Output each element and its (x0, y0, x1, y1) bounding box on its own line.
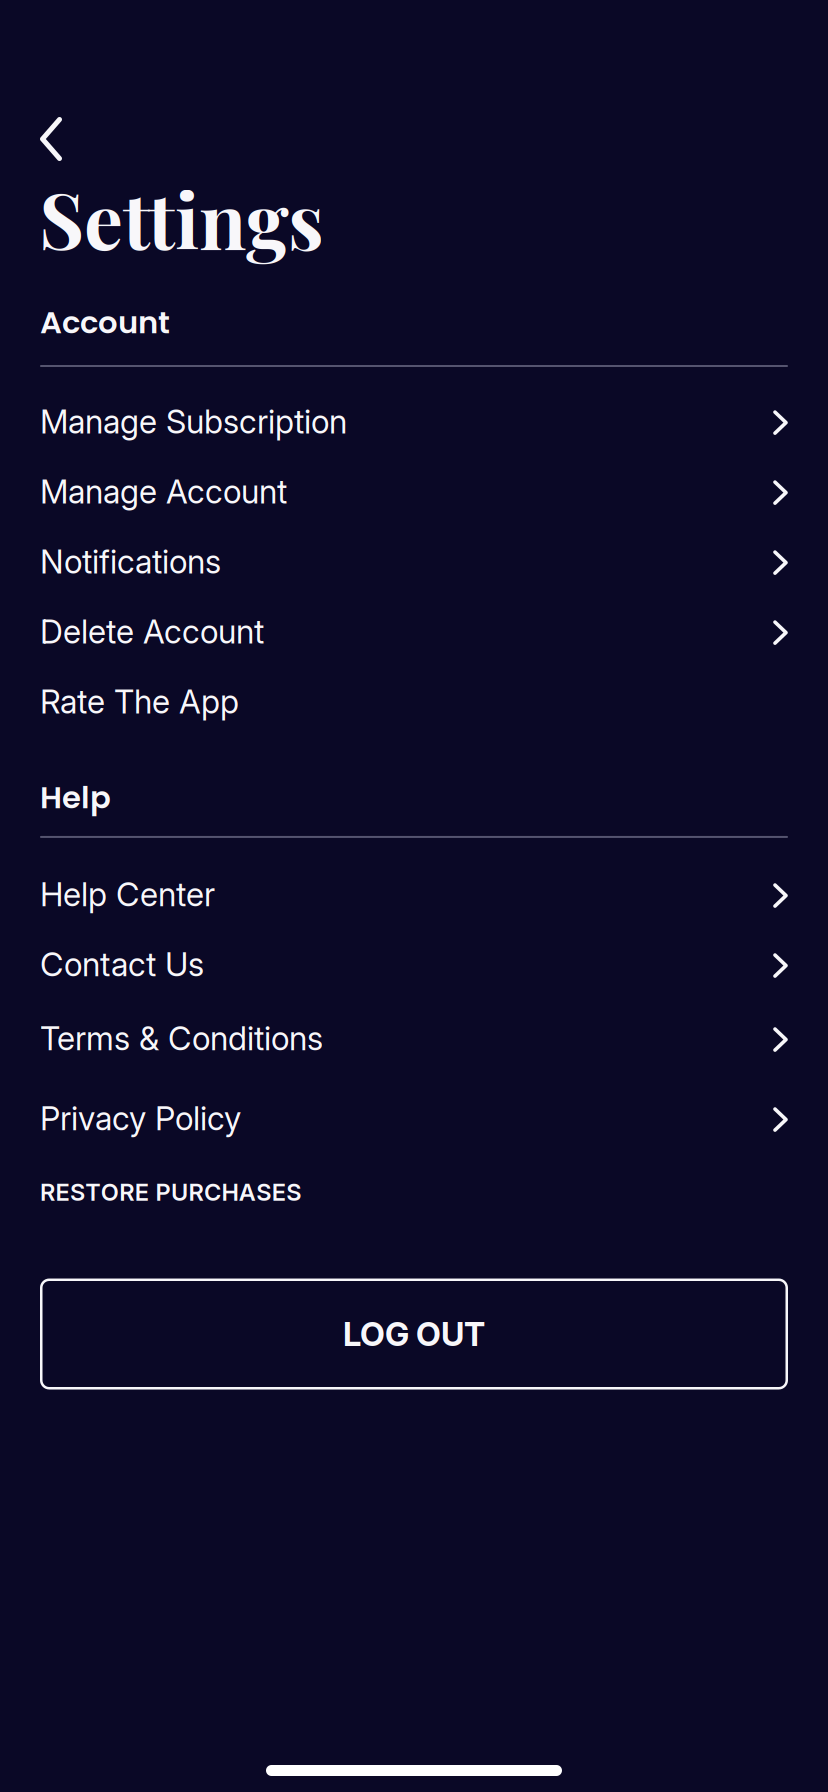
staticText: RESTORE PURCHASES (40, 1178, 301, 1207)
staticText: Rate The App (40, 682, 239, 721)
button[interactable]: Rate The App (0, 682, 828, 752)
button[interactable]: Manage Subscription (0, 402, 828, 472)
staticText: Manage Subscription (40, 402, 347, 441)
button[interactable]: Back (28, 112, 84, 166)
button[interactable]: Contact Us (0, 945, 828, 1019)
staticText: Help Center (40, 875, 215, 914)
staticText: Settings (39, 166, 324, 269)
button[interactable]: Manage Account (0, 472, 828, 542)
button[interactable]: RESTORE PURCHASES (40, 1172, 301, 1213)
staticText: Manage Account (40, 472, 287, 511)
staticText: Terms & Conditions (40, 1019, 323, 1058)
button[interactable]: LOG OUT (40, 1278, 788, 1389)
staticText: Privacy Policy (40, 1099, 241, 1138)
staticText: Delete Account (40, 612, 264, 651)
staticText: Contact Us (40, 945, 204, 984)
staticText: LOG OUT (343, 1314, 485, 1354)
staticText: Help (40, 776, 111, 819)
staticText: Account (40, 301, 170, 344)
button[interactable]: Notifications (0, 542, 828, 612)
button[interactable]: Privacy Policy (0, 1099, 828, 1169)
staticText: Notifications (40, 542, 221, 581)
button[interactable]: Terms & Conditions (0, 1019, 828, 1099)
button[interactable]: Delete Account (0, 612, 828, 682)
button[interactable]: Help Center (0, 875, 828, 945)
